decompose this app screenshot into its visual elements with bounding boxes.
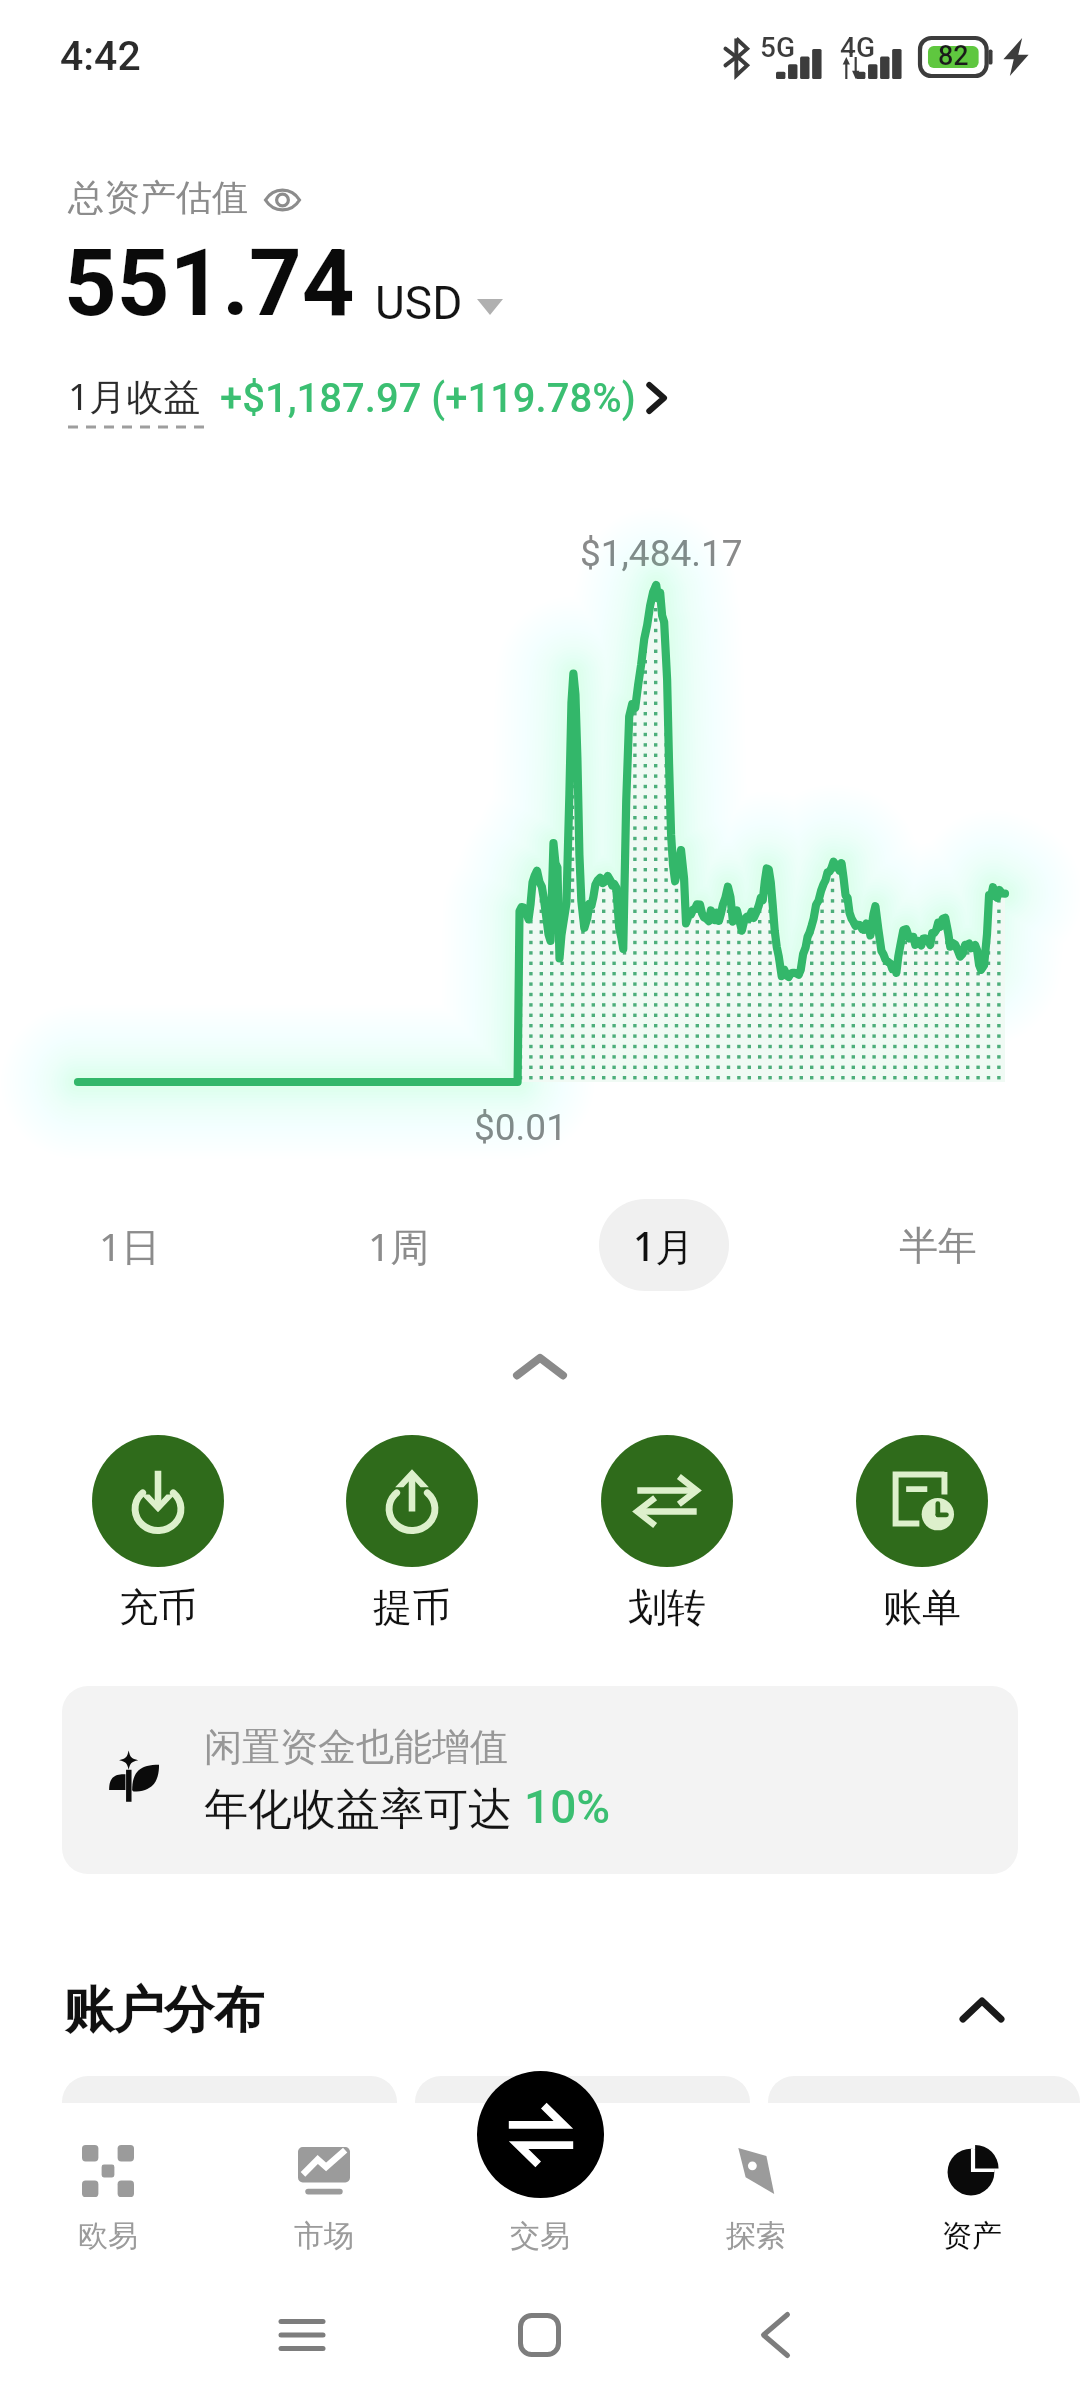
staticText: 划转 <box>628 1583 706 1632</box>
staticText: 10% <box>524 1780 611 1834</box>
button[interactable]: 1日 <box>65 1199 195 1291</box>
button[interactable]: 充币 <box>31 1435 285 1632</box>
staticText: 账单 <box>883 1583 961 1632</box>
staticText: +$1,187.97 (+119.78%) <box>220 375 636 422</box>
staticText: $0.01 <box>474 1106 567 1149</box>
button[interactable]: 资产 <box>864 2103 1080 2255</box>
staticText: $1,484.17 <box>580 532 743 575</box>
button[interactable]: Recents <box>257 2290 347 2380</box>
button[interactable] <box>415 2076 750 2286</box>
staticText: 市场 <box>294 2217 354 2255</box>
button[interactable]: 交易 <box>432 2103 648 2255</box>
staticText: 1日 <box>99 1219 161 1272</box>
staticText: 探索 <box>726 2217 786 2255</box>
staticText: 资产 <box>942 2217 1002 2255</box>
button[interactable]: 1周 <box>334 1199 464 1291</box>
staticText: 1月收益 <box>68 370 201 421</box>
staticText: 充币 <box>119 1583 197 1632</box>
staticText: 82 <box>938 40 969 72</box>
staticText: 5G <box>760 31 795 64</box>
staticText: USD <box>375 276 463 330</box>
button[interactable]: 市场 <box>216 2103 432 2255</box>
button[interactable]: Trade <box>477 2071 604 2198</box>
button[interactable]: 1月 <box>599 1199 729 1291</box>
staticText: 1周 <box>368 1219 430 1272</box>
staticText: 闲置资金也能增值 <box>204 1723 508 1771</box>
button[interactable]: USD <box>375 276 503 330</box>
staticText: 半年 <box>899 1221 977 1270</box>
button[interactable]: Back <box>730 2290 820 2380</box>
staticText: 年化收益率可达 <box>204 1777 524 1837</box>
staticText: 4:42 <box>60 32 141 80</box>
staticText: 账户分布 <box>64 1979 264 2042</box>
staticText: 551.74 <box>64 230 355 338</box>
staticText: 总资产估值 <box>68 175 248 220</box>
staticText: 4G <box>840 31 875 64</box>
staticText: 欧易 <box>78 2217 138 2255</box>
button[interactable]: 1月收益 <box>68 370 668 426</box>
button[interactable]: 账单 <box>794 1435 1049 1632</box>
button[interactable]: 欧易 <box>0 2103 216 2255</box>
button[interactable]: Collapse chart <box>495 1332 585 1402</box>
button[interactable] <box>62 2076 397 2286</box>
staticText: 1月 <box>633 1219 695 1272</box>
button[interactable]: 探索 <box>648 2103 864 2255</box>
button[interactable]: Home <box>494 2290 584 2380</box>
button[interactable]: 提币 <box>285 1435 539 1632</box>
button[interactable]: 划转 <box>539 1435 794 1632</box>
button[interactable]: 半年 <box>873 1199 1003 1291</box>
button[interactable]: Toggle balance visibility <box>68 175 301 220</box>
button[interactable]: Collapse accounts <box>942 1970 1022 2050</box>
button[interactable] <box>768 2076 1080 2286</box>
staticText: 交易 <box>510 2217 570 2255</box>
button[interactable]: 闲置资金也能增值 <box>62 1686 1018 1874</box>
staticText: 提币 <box>373 1583 451 1632</box>
